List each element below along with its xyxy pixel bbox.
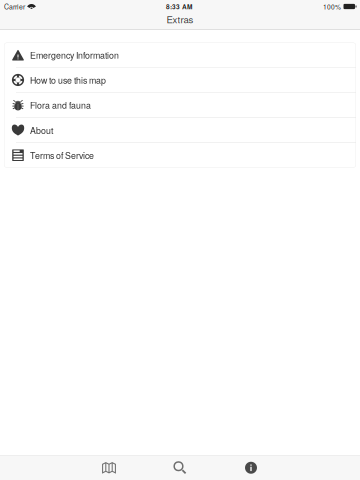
staticText: Carrier — [4, 1, 25, 11]
button[interactable]: Info — [215, 455, 286, 480]
button[interactable]: Map — [73, 455, 144, 480]
staticText: Extras — [166, 12, 193, 26]
staticText: Emergency Information — [30, 49, 119, 61]
button[interactable]: About — [4, 118, 356, 143]
staticText: Terms of Service — [30, 149, 94, 161]
staticText: 100% — [323, 2, 341, 11]
staticText: Flora and fauna — [30, 99, 91, 111]
staticText: About — [30, 124, 53, 136]
button[interactable]: Emergency Information — [4, 43, 356, 68]
staticText: How to use this map — [30, 74, 106, 86]
button[interactable]: Terms of Service — [4, 143, 356, 167]
button[interactable]: How to use this map — [4, 68, 356, 93]
staticText: 8:33 AM — [166, 2, 192, 11]
button[interactable]: Flora and fauna — [4, 93, 356, 118]
button[interactable]: Search — [144, 455, 215, 480]
